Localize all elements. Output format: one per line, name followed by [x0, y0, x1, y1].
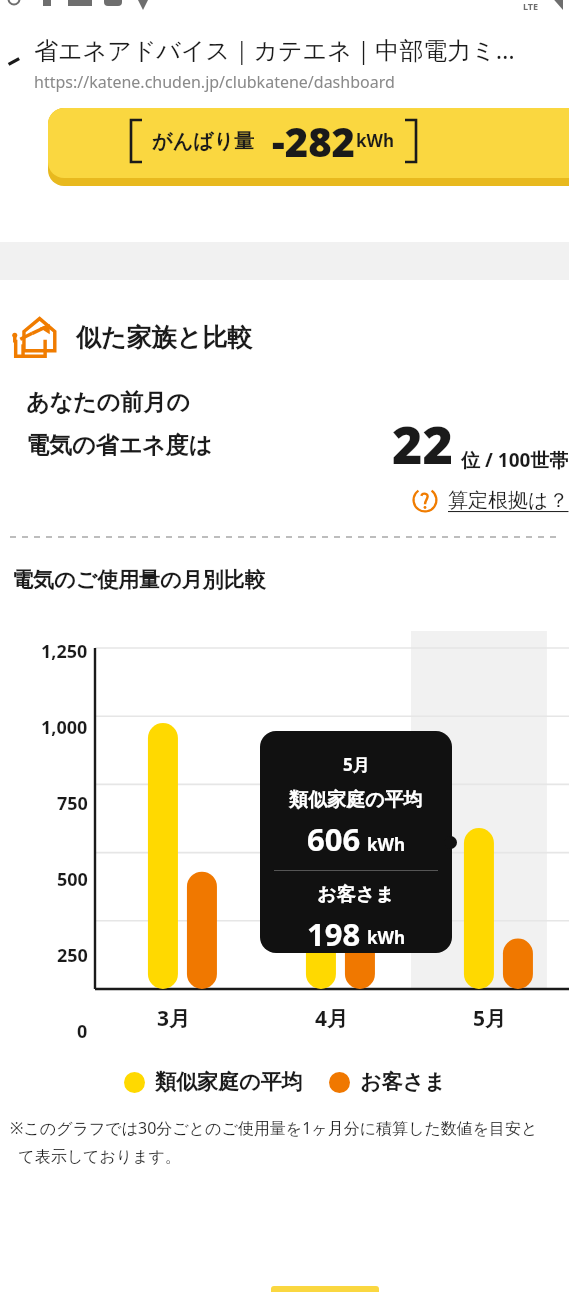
- staticText: 5月: [473, 1004, 507, 1033]
- button[interactable]: がんばり量: [48, 108, 569, 186]
- staticText: 1,000: [41, 715, 88, 740]
- staticText: 22: [392, 408, 453, 479]
- staticText: 606: [307, 818, 361, 860]
- staticText: 198: [307, 913, 361, 953]
- staticText: お客さま: [317, 883, 395, 907]
- staticText: 3月: [157, 1004, 191, 1033]
- staticText: がんばり量: [152, 129, 254, 154]
- staticText: 似た家族と比較: [76, 322, 253, 353]
- staticText: 電気の省エネ度は: [26, 431, 213, 460]
- staticText: 0: [77, 1019, 88, 1044]
- staticText: 250: [57, 943, 88, 968]
- staticText: お客さま: [360, 1069, 446, 1095]
- staticText: 1,250: [41, 639, 88, 664]
- staticText: ※このグラフでは30分ごとのご使用量を1ヶ月分に積算した数値を目安と: [10, 1117, 538, 1139]
- staticText: 算定根拠は？: [448, 488, 569, 513]
- staticText: 4月: [315, 1004, 349, 1033]
- staticText: 電気のご使用量の月別比較: [12, 567, 266, 593]
- other: Back: [2, 52, 24, 74]
- staticText: LTE: [523, 0, 539, 12]
- staticText: 位 / 100世帯: [461, 447, 569, 473]
- staticText: 類似家庭の平均: [289, 788, 423, 812]
- staticText: あなたの前月の: [26, 388, 190, 417]
- staticText: 省エネアドバイス｜カテエネ｜中部電力ミ…: [34, 33, 515, 66]
- staticText: https://katene.chuden.jp/clubkatene/dash…: [34, 71, 395, 93]
- staticText: kWh: [356, 129, 395, 152]
- staticText: -282: [272, 114, 356, 168]
- staticText: て表示しております。: [10, 1145, 181, 1167]
- staticText: kWh: [367, 926, 406, 949]
- staticText: 750: [57, 791, 88, 816]
- staticText: kWh: [367, 833, 406, 856]
- staticText: 5月: [343, 753, 370, 776]
- staticText: 類似家庭の平均: [155, 1069, 303, 1095]
- staticText: 500: [57, 867, 88, 892]
- button[interactable]: Back: [0, 18, 569, 108]
- button[interactable]: 算定根拠は？: [412, 487, 569, 513]
